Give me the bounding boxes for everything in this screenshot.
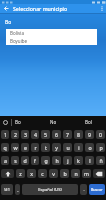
- staticText: q: [3, 144, 7, 151]
- button[interactable]: a: [1, 156, 9, 165]
- button[interactable]: More options: [97, 4, 106, 13]
- button[interactable]: p: [96, 143, 105, 152]
- button[interactable]: r: [31, 143, 39, 152]
- staticText: m: [84, 170, 89, 177]
- button[interactable]: Bo: [0, 116, 36, 128]
- staticText: j: [67, 157, 69, 164]
- button[interactable]: u: [63, 143, 72, 152]
- staticText: n: [74, 170, 78, 177]
- button[interactable]: j: [63, 156, 72, 165]
- button[interactable]: h: [52, 156, 61, 165]
- button[interactable]: Shift: [1, 169, 14, 178]
- button[interactable]: q: [1, 143, 9, 152]
- staticText: Boyuibe: [10, 38, 28, 44]
- button[interactable]: 5: [41, 130, 50, 139]
- button[interactable]: 1: [1, 130, 9, 139]
- staticText: y: [55, 144, 58, 151]
- staticText: w: [13, 144, 18, 151]
- button[interactable]: .: [80, 184, 87, 195]
- button[interactable]: 6: [52, 130, 61, 139]
- staticText: z: [19, 170, 22, 177]
- button[interactable]: No: [36, 116, 71, 128]
- staticText: No: [50, 119, 57, 125]
- button[interactable]: Bol: [71, 116, 106, 128]
- staticText: 5: [44, 131, 47, 138]
- staticText: 7: [66, 131, 69, 138]
- staticText: 0: [99, 131, 102, 138]
- staticText: Bo: [15, 119, 21, 125]
- button[interactable]: 4: [31, 130, 39, 139]
- button[interactable]: 9: [85, 130, 94, 139]
- button[interactable]: t: [41, 143, 50, 152]
- staticText: Español (US): [38, 187, 62, 192]
- button[interactable]: 7: [63, 130, 72, 139]
- staticText: Buscar: [91, 187, 103, 192]
- staticText: 4: [34, 131, 37, 138]
- button[interactable]: i: [74, 143, 83, 152]
- button[interactable]: n: [71, 169, 80, 178]
- staticText: 2: [14, 131, 17, 138]
- button[interactable]: x: [27, 169, 36, 178]
- staticText: !#1: [4, 187, 10, 192]
- button[interactable]: Back: [0, 4, 13, 13]
- staticText: ñ: [99, 157, 103, 164]
- staticText: a: [4, 157, 7, 164]
- staticText: f: [34, 157, 36, 164]
- staticText: r: [34, 144, 37, 151]
- staticText: o: [88, 144, 92, 151]
- button[interactable]: b: [60, 169, 69, 178]
- staticText: x: [30, 170, 33, 177]
- button[interactable]: y: [52, 143, 61, 152]
- staticText: c: [41, 170, 44, 177]
- staticText: Bo: [5, 19, 12, 26]
- button[interactable]: v: [49, 169, 58, 178]
- staticText: b: [63, 170, 67, 177]
- staticText: 8: [77, 131, 80, 138]
- staticText: t: [45, 144, 47, 151]
- staticText: Seleccionar municipio: [13, 5, 68, 12]
- button[interactable]: w: [11, 143, 19, 152]
- button[interactable]: ñ: [96, 156, 105, 165]
- staticText: g: [44, 157, 48, 164]
- staticText: d: [23, 157, 27, 164]
- staticText: 9: [88, 131, 91, 138]
- staticText: l: [89, 157, 91, 164]
- button[interactable]: c: [38, 169, 47, 178]
- button[interactable]: !#1: [1, 184, 13, 195]
- button[interactable]: 8: [74, 130, 83, 139]
- button[interactable]: g: [41, 156, 50, 165]
- staticText: v: [52, 170, 55, 177]
- staticText: p: [99, 144, 103, 151]
- staticText: k: [77, 157, 80, 164]
- button[interactable]: ,: [15, 184, 20, 195]
- button[interactable]: 2: [11, 130, 19, 139]
- staticText: Bol: [85, 119, 92, 125]
- staticText: e: [24, 144, 27, 151]
- button[interactable]: o: [85, 143, 94, 152]
- staticText: u: [66, 144, 70, 151]
- staticText: h: [55, 157, 59, 164]
- staticText: 3: [24, 131, 27, 138]
- staticText: 6: [55, 131, 58, 138]
- button[interactable]: 3: [21, 130, 29, 139]
- staticText: Bolivia: [10, 30, 24, 36]
- button[interactable]: Backspace: [93, 169, 105, 178]
- button[interactable]: Bolivia: [6, 29, 97, 37]
- button[interactable]: l: [85, 156, 94, 165]
- staticText: 1: [4, 131, 7, 138]
- button[interactable]: 0: [96, 130, 105, 139]
- button[interactable]: m: [82, 169, 91, 178]
- button[interactable]: Español (US): [22, 184, 78, 195]
- button[interactable]: z: [16, 169, 25, 178]
- staticText: s: [14, 157, 17, 164]
- button[interactable]: Search: [89, 184, 105, 195]
- button[interactable]: Boyuibe: [6, 37, 97, 45]
- button[interactable]: Emoji: [0, 116, 11, 128]
- staticText: ,: [17, 187, 19, 192]
- button[interactable]: k: [74, 156, 83, 165]
- button[interactable]: d: [21, 156, 29, 165]
- button[interactable]: e: [21, 143, 29, 152]
- staticText: .: [83, 187, 85, 192]
- button[interactable]: s: [11, 156, 19, 165]
- button[interactable]: f: [31, 156, 39, 165]
